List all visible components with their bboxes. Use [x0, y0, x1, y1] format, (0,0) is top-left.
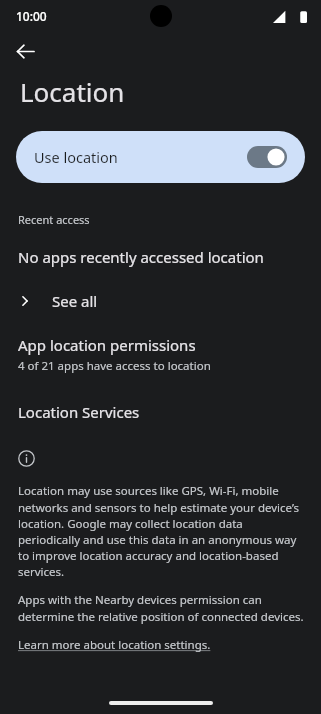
button[interactable]: Back [6, 32, 44, 70]
button[interactable]: Learn more about location settings. [0, 637, 225, 653]
staticText: 4 of 21 apps have access to location [18, 358, 211, 374]
button[interactable]: Location Services [0, 400, 321, 424]
staticText: Location Services [18, 402, 140, 422]
staticText: Location may use sources like GPS, Wi-Fi… [18, 483, 307, 579]
staticText: Recent access [18, 212, 90, 227]
staticText: App location permissions [18, 335, 196, 355]
staticText: See all [52, 291, 98, 311]
staticText: Apps with the Nearby devices permission … [18, 592, 307, 624]
staticText: 10:00 [16, 8, 47, 24]
button[interactable]: See all [0, 287, 321, 315]
button[interactable]: Use location [16, 131, 305, 183]
staticText: Location [20, 74, 125, 109]
staticText: Use location [34, 147, 247, 167]
staticText: Learn more about location settings. [18, 637, 211, 653]
staticText: No apps recently accessed location [18, 247, 264, 267]
button[interactable]: App location permissions [0, 333, 321, 376]
